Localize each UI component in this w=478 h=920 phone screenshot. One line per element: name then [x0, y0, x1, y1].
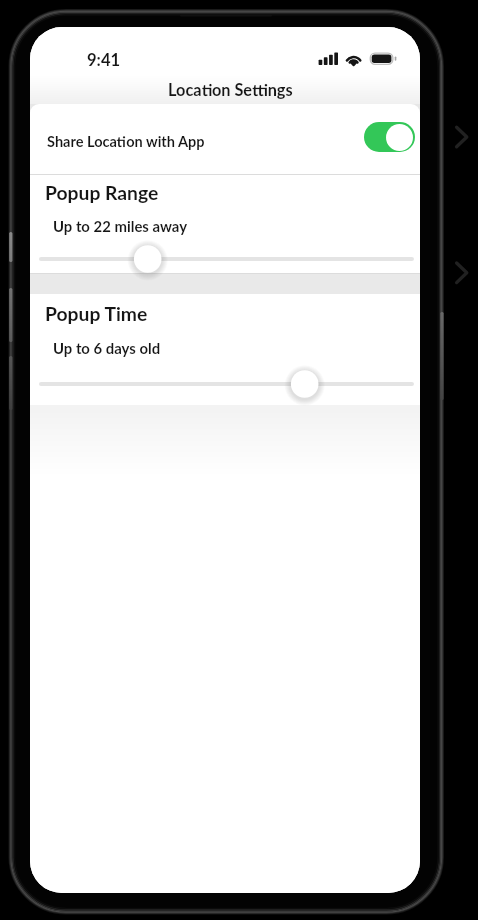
button[interactable]: Slider — [30, 244, 420, 274]
other: Cellular signal, Wi-Fi, battery — [30, 27, 420, 75]
other: Next screen — [0, 0, 478, 920]
staticText: Up to 6 days old — [53, 339, 161, 357]
other: Next screen — [0, 0, 478, 920]
button[interactable]: Slider — [30, 369, 420, 399]
button[interactable]: Share Location with App — [30, 104, 420, 174]
staticText: Location Settings — [168, 80, 293, 100]
staticText: Popup Range — [45, 181, 159, 204]
staticText: Popup Time — [45, 302, 148, 325]
button[interactable]: Share location with app, on — [364, 122, 415, 152]
staticText: Up to 22 miles away — [53, 217, 188, 235]
staticText: Share Location with App — [47, 133, 205, 150]
staticText: 9:41 — [87, 50, 121, 70]
